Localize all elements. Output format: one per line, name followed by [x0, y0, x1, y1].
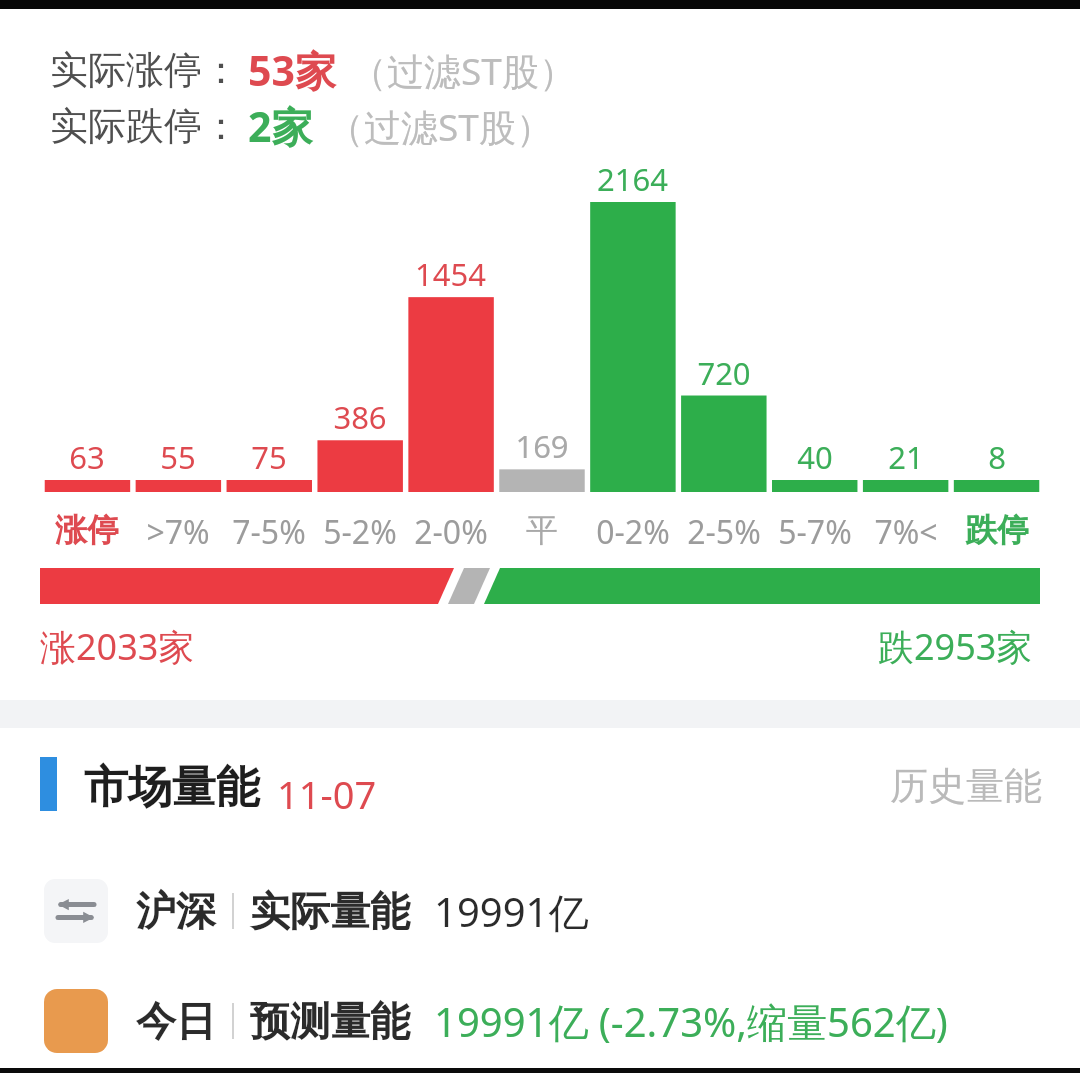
staticText: 5-7% [778, 510, 852, 554]
staticText: 55 [160, 436, 196, 478]
staticText: 63 [69, 436, 105, 478]
button[interactable]: 今日 [44, 978, 1080, 1064]
staticText: 2-0% [414, 510, 488, 554]
button[interactable]: 历史量能 [890, 762, 1042, 810]
staticText: 实际涨停： [50, 46, 240, 94]
button[interactable]: 切换市场 [44, 868, 1080, 954]
staticText: >7% [146, 510, 210, 554]
staticText: 11-07 [277, 768, 377, 820]
staticText: 2家 [248, 98, 313, 154]
staticText: 跌2953家 [878, 622, 1033, 671]
staticText: 720 [697, 352, 751, 394]
staticText: 实际量能 [250, 886, 410, 936]
staticText: 19991亿 (-2.73%,缩量562亿) [434, 994, 948, 1049]
staticText: 386 [333, 396, 387, 438]
staticText: 2164 [597, 158, 668, 200]
staticText: 21 [888, 436, 924, 478]
staticText: 涨停 [55, 510, 119, 550]
staticText: 8 [988, 436, 1006, 478]
staticText: 市场量能 [84, 760, 260, 815]
staticText: 涨2033家 [40, 622, 195, 671]
staticText: 5-2% [323, 510, 397, 554]
staticText: 40 [797, 436, 833, 478]
staticText: 跌停 [965, 510, 1029, 550]
staticText: 预测量能 [250, 996, 410, 1046]
staticText: 1454 [415, 253, 486, 295]
button[interactable]: 切换市场 [44, 879, 108, 943]
staticText: 19991亿 [434, 884, 589, 939]
staticText: （过滤ST股） [350, 45, 576, 96]
staticText: 0-2% [596, 510, 670, 554]
staticText: （过滤ST股） [327, 101, 553, 152]
staticText: 平 [526, 510, 558, 550]
staticText: 75 [251, 436, 287, 478]
staticText: 2-5% [687, 510, 761, 554]
staticText: 历史量能 [890, 762, 1042, 810]
staticText: 7%< [874, 510, 938, 554]
staticText: 实际跌停： [50, 102, 240, 150]
staticText: 7-5% [232, 510, 306, 554]
button[interactable] [40, 568, 1040, 604]
staticText: 沪深 [136, 886, 216, 936]
staticText: 今日 [136, 996, 216, 1046]
staticText: 169 [515, 425, 569, 467]
staticText: 53家 [248, 42, 336, 98]
